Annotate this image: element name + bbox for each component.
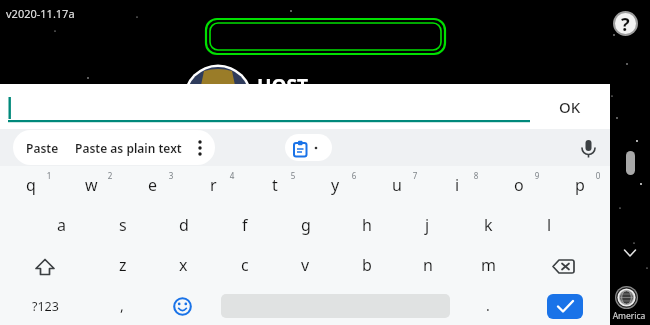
staticText: America xyxy=(607,310,650,322)
staticText: 2 xyxy=(102,170,118,181)
button[interactable]: ?123 xyxy=(20,288,71,324)
button[interactable]: Voice input xyxy=(576,137,601,162)
staticText: s xyxy=(119,214,127,236)
button[interactable]: , xyxy=(102,288,142,324)
staticText: b xyxy=(362,254,372,276)
button[interactable]: k xyxy=(458,206,519,246)
staticText: 9 xyxy=(529,170,545,181)
staticText: Paste xyxy=(26,140,59,156)
button[interactable]: h xyxy=(336,206,397,246)
staticText: q xyxy=(26,174,36,196)
button[interactable]: o xyxy=(488,166,549,206)
button[interactable]: y xyxy=(305,166,366,206)
staticText: v xyxy=(301,254,310,276)
button[interactable]: m xyxy=(458,246,519,286)
button[interactable]: z xyxy=(92,246,153,286)
staticText: y xyxy=(331,174,340,196)
staticText: z xyxy=(119,254,127,276)
staticText: k xyxy=(484,214,493,236)
staticText: l xyxy=(547,214,552,236)
staticText: 6 xyxy=(346,170,362,181)
button[interactable]: OK xyxy=(548,84,592,128)
staticText: d xyxy=(179,214,189,236)
staticText: Paste as plain text xyxy=(75,140,182,156)
staticText: 4 xyxy=(224,170,240,181)
button[interactable]: More options xyxy=(189,137,211,159)
button[interactable]: Enter xyxy=(547,294,583,319)
button[interactable]: x xyxy=(153,246,214,286)
staticText: ?123 xyxy=(32,298,59,315)
staticText: OK xyxy=(559,97,581,117)
staticText: . xyxy=(486,296,490,315)
button[interactable]: r xyxy=(183,166,244,206)
staticText: p xyxy=(575,174,585,196)
staticText: g xyxy=(301,214,311,236)
staticText: 0 xyxy=(590,170,606,181)
button[interactable]: Shift xyxy=(29,257,61,289)
button[interactable]: Backspace xyxy=(548,257,580,289)
staticText: , xyxy=(120,296,124,315)
staticText: c xyxy=(241,254,249,276)
button[interactable]: q xyxy=(0,166,61,206)
staticText: HOST xyxy=(257,73,308,99)
button[interactable]: v xyxy=(275,246,336,286)
button[interactable]: Paste as plain text xyxy=(68,140,189,156)
button[interactable]: Paste xyxy=(17,140,68,156)
button[interactable]: b xyxy=(336,246,397,286)
staticText: ? xyxy=(621,13,630,33)
staticText: u xyxy=(392,174,402,196)
button[interactable]: f xyxy=(214,206,275,246)
staticText: 7 xyxy=(407,170,423,181)
staticText: j xyxy=(425,214,430,236)
button[interactable]: s xyxy=(92,206,153,246)
staticText: e xyxy=(148,174,158,196)
button[interactable]: Emoji xyxy=(172,296,193,317)
staticText: x xyxy=(179,254,188,276)
staticText: w xyxy=(85,174,98,196)
staticText: 5 xyxy=(285,170,301,181)
staticText: t xyxy=(272,174,278,196)
button[interactable]: t xyxy=(244,166,305,206)
button[interactable]: c xyxy=(214,246,275,286)
button[interactable]: g xyxy=(275,206,336,246)
staticText: r xyxy=(210,174,217,196)
staticText: a xyxy=(57,214,66,236)
staticText: o xyxy=(514,174,524,196)
staticText: m xyxy=(481,254,496,276)
button[interactable]: Language xyxy=(615,286,638,309)
button[interactable]: u xyxy=(366,166,427,206)
staticText: 8 xyxy=(468,170,484,181)
staticText: f xyxy=(242,214,248,236)
staticText: n xyxy=(423,254,433,276)
button[interactable]: d xyxy=(153,206,214,246)
button[interactable]: e xyxy=(122,166,183,206)
staticText: v2020-11.17a xyxy=(6,6,75,21)
button[interactable]: Clipboard xyxy=(285,134,332,161)
button[interactable]: i xyxy=(427,166,488,206)
staticText: h xyxy=(362,214,372,236)
button[interactable]: a xyxy=(31,206,92,246)
staticText: i xyxy=(455,174,460,196)
button[interactable]: p xyxy=(549,166,610,206)
staticText: 1 xyxy=(41,170,57,181)
button[interactable]: Expand xyxy=(620,244,640,264)
button[interactable]: l xyxy=(519,206,580,246)
staticText: 3 xyxy=(163,170,179,181)
button[interactable]: w xyxy=(61,166,122,206)
button[interactable]: n xyxy=(397,246,458,286)
button[interactable]: . xyxy=(468,288,508,324)
button[interactable]: j xyxy=(397,206,458,246)
button[interactable]: Help xyxy=(615,13,636,34)
